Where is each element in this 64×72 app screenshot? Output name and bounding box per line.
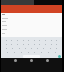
button[interactable]: Back (14, 59, 17, 62)
button[interactable]: Home (30, 59, 33, 62)
button[interactable]: Send (58, 55, 61, 58)
button[interactable]: Recents (46, 59, 49, 62)
